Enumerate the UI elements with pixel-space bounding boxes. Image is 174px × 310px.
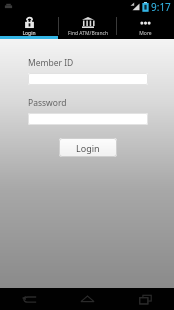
button[interactable]: Recent apps [116,288,174,310]
other: Login [24,17,35,29]
button[interactable]: Back [0,288,58,310]
staticText: 9:17 [151,0,171,13]
button[interactable] [28,113,148,125]
button[interactable]: Find ATM or Branch [59,13,116,39]
staticText: Member ID [28,57,74,69]
button[interactable]: Home [58,288,116,310]
other: Find ATM or Branch [82,17,94,28]
staticText: Login [76,142,100,154]
staticText: Login [22,30,36,37]
button[interactable]: Login [59,138,117,157]
staticText: Find ATM/Branch [68,30,108,37]
button[interactable] [28,73,148,85]
button[interactable]: Login [0,13,58,39]
staticText: Password [28,97,67,109]
other: More [139,20,152,26]
button[interactable]: More [117,13,174,39]
staticText: More [139,30,152,37]
